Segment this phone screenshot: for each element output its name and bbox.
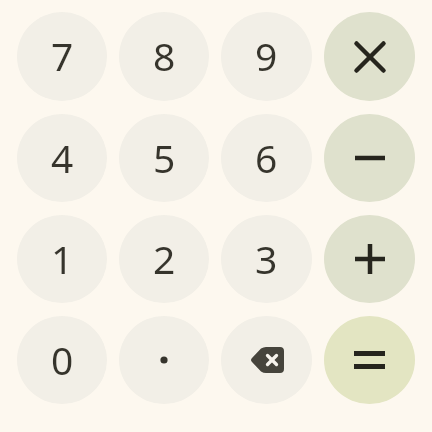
staticText: 5 — [153, 131, 176, 184]
button[interactable] — [324, 114, 415, 202]
button[interactable]: 5 — [119, 114, 209, 202]
staticText: 6 — [255, 131, 278, 184]
button[interactable] — [324, 316, 415, 404]
button[interactable] — [221, 316, 312, 404]
staticText: 0 — [51, 333, 74, 386]
staticText: 1 — [51, 232, 74, 285]
button[interactable]: 7 — [17, 12, 107, 101]
button[interactable]: 4 — [17, 114, 107, 202]
staticText: 9 — [255, 29, 278, 82]
staticText: 4 — [51, 131, 74, 184]
button[interactable] — [119, 316, 209, 404]
staticText: 7 — [51, 29, 74, 82]
button[interactable]: 3 — [221, 215, 312, 303]
button[interactable]: 0 — [17, 316, 107, 404]
button[interactable] — [324, 12, 415, 101]
button[interactable]: 1 — [17, 215, 107, 303]
button[interactable] — [324, 215, 415, 303]
staticText: 3 — [255, 232, 278, 285]
button[interactable]: 6 — [221, 114, 312, 202]
staticText: 8 — [153, 29, 176, 82]
button[interactable]: 8 — [119, 12, 209, 101]
staticText: 2 — [153, 232, 176, 285]
button[interactable]: 9 — [221, 12, 312, 101]
button[interactable]: 2 — [119, 215, 209, 303]
